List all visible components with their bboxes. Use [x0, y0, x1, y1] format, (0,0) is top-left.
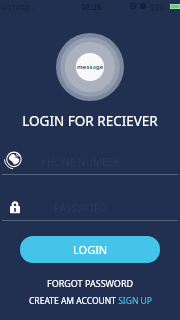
staticText: CREATE AM ACCOUNT SIGN UP	[29, 295, 152, 307]
other: Phone number	[6, 151, 25, 170]
staticText: Searching...	[0, 1, 36, 12]
button[interactable]: CREATE AM ACCOUNT SIGN UP	[0, 294, 180, 307]
button[interactable]: FORGOT PASSWORD	[0, 276, 180, 289]
staticText: FORGOT PASSWORD	[47, 277, 134, 289]
other: Password	[10, 201, 24, 215]
button[interactable]: LOGIN	[20, 236, 160, 263]
staticText: 08:28	[81, 1, 102, 12]
staticText: 92%	[150, 2, 166, 13]
button[interactable]: Phone number	[0, 150, 180, 174]
staticText: message	[77, 63, 104, 71]
button[interactable]: Password	[0, 196, 180, 220]
staticText: LOGIN FOR RECIEVER	[0, 112, 180, 130]
staticText: LOGIN	[73, 242, 108, 257]
